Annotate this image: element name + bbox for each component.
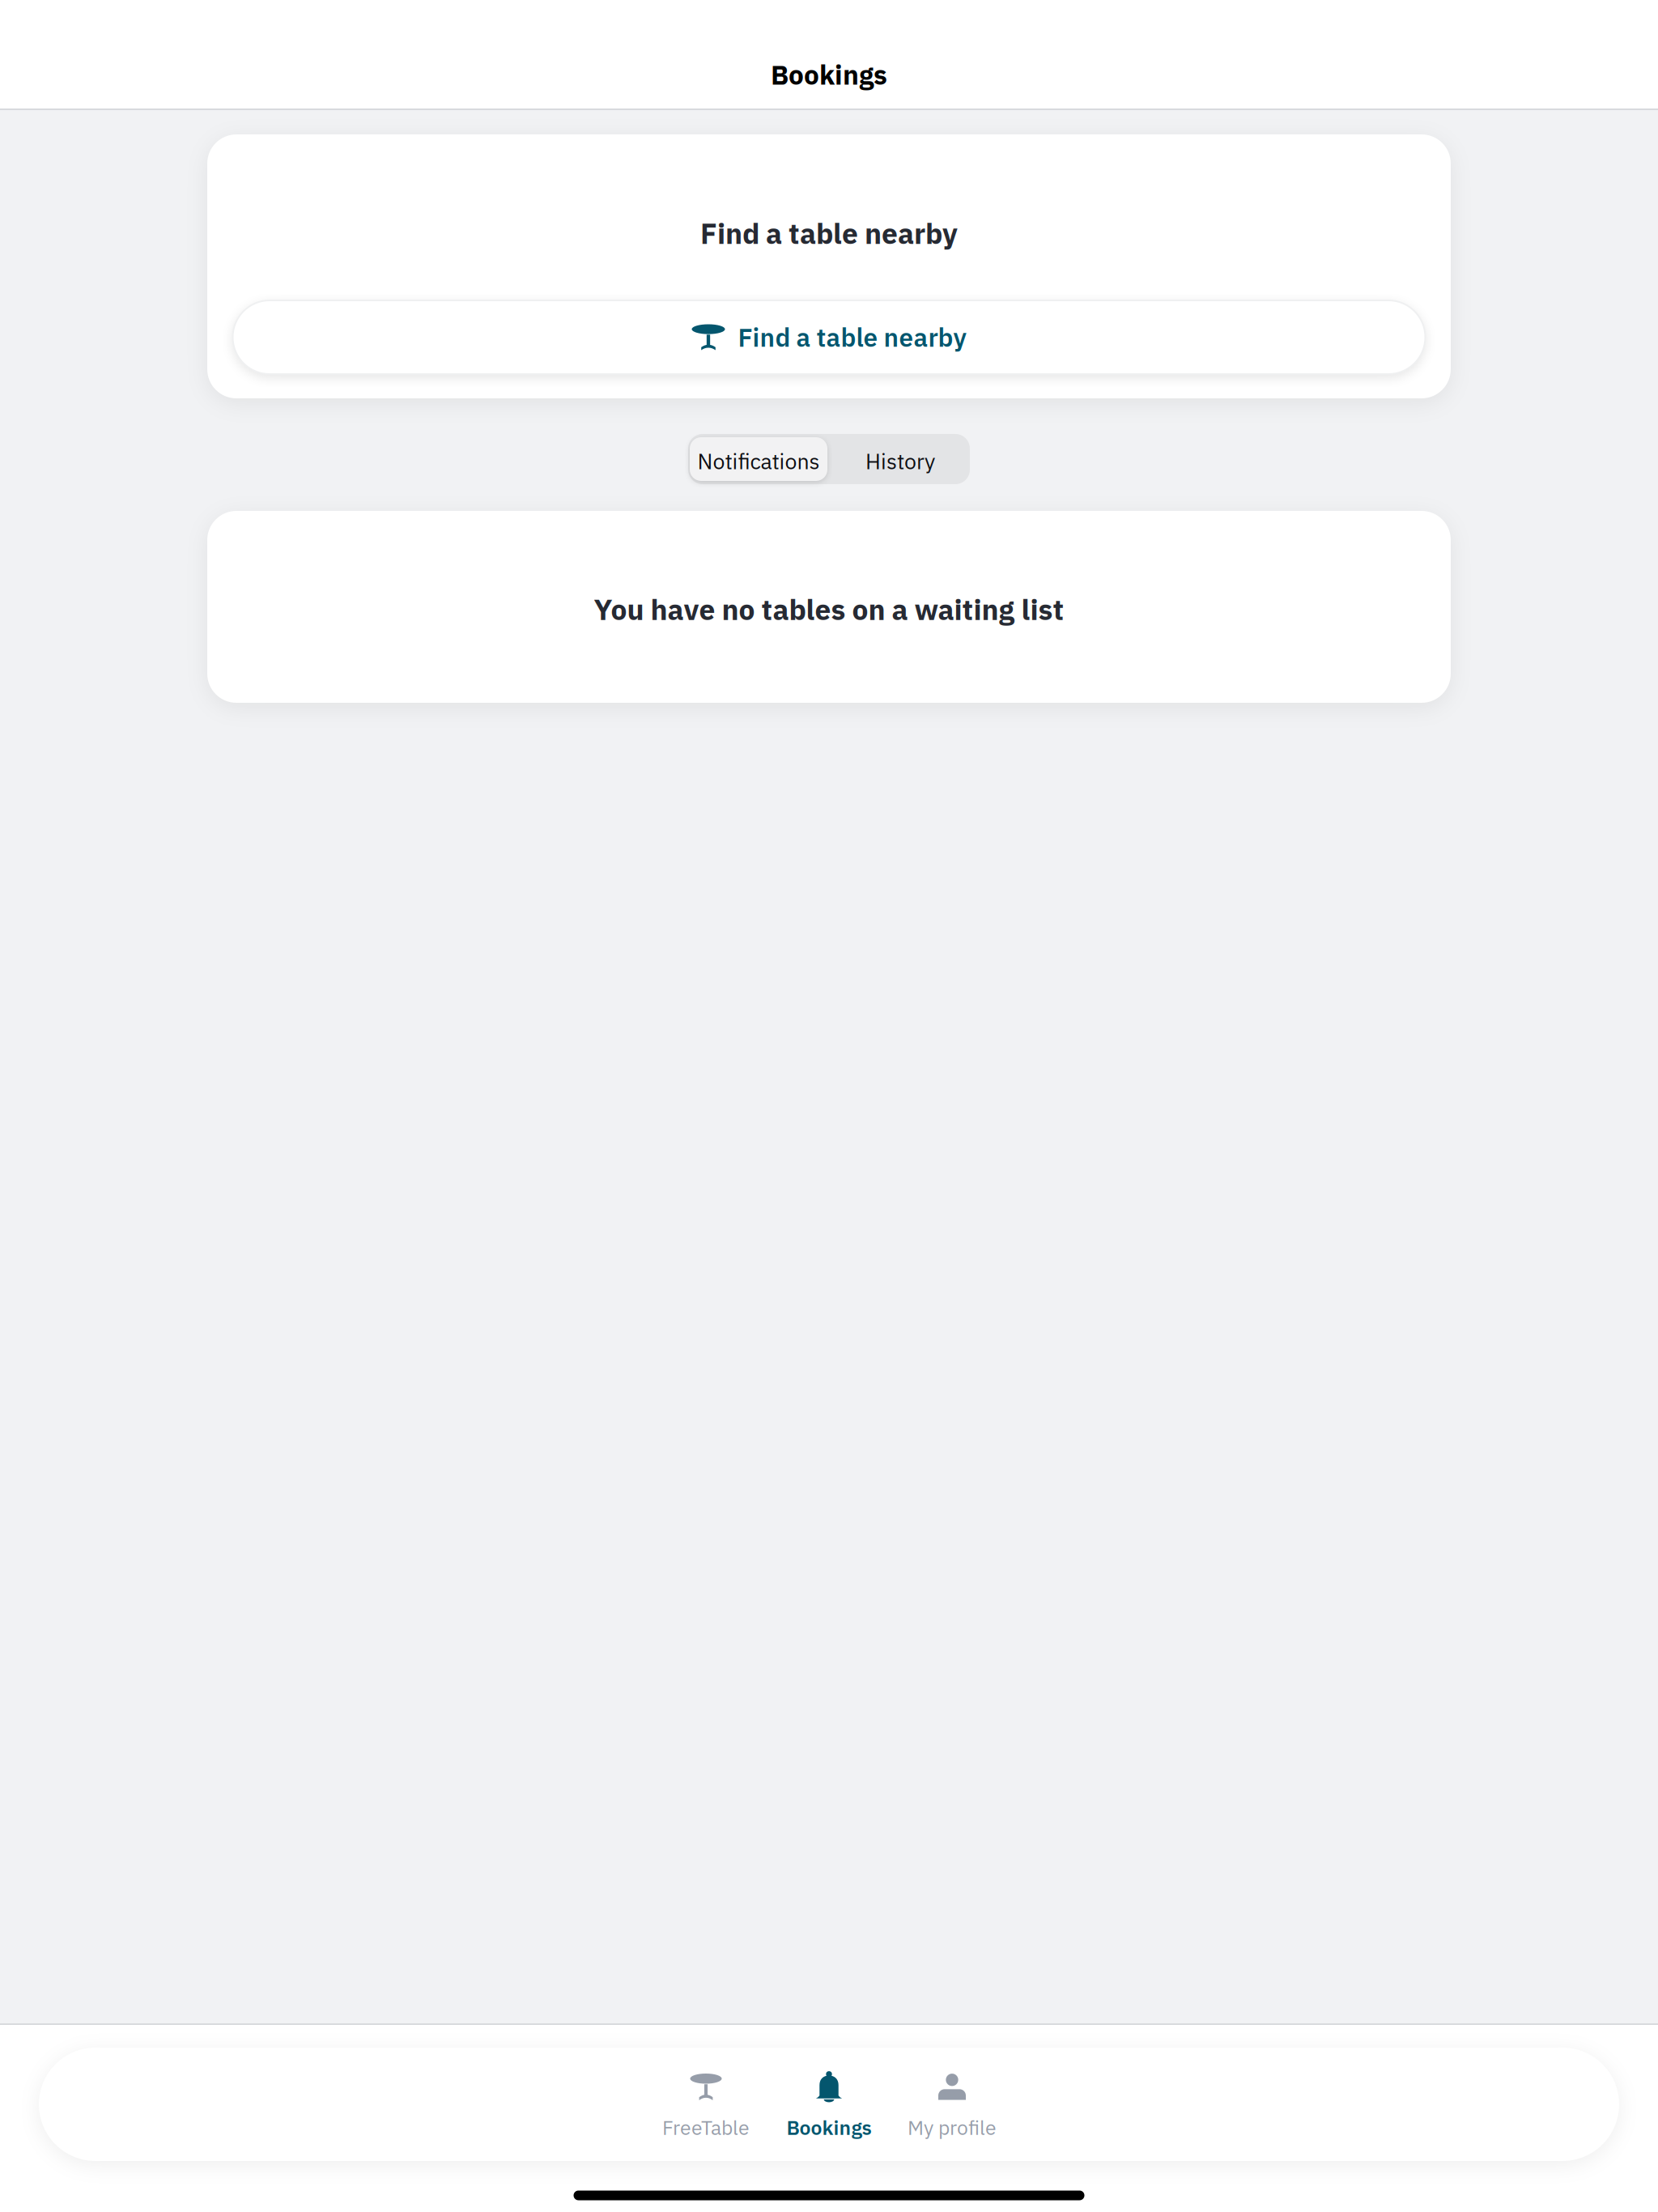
staticText: You have no tables on a waiting list	[594, 591, 1064, 628]
staticText: Find a table nearby	[700, 215, 958, 252]
staticText: My profile	[908, 2114, 997, 2140]
button[interactable]: Notifications	[690, 437, 827, 481]
staticText: FreeTable	[662, 2114, 750, 2140]
button[interactable]: History	[831, 439, 969, 483]
staticText: Bookings	[771, 57, 887, 92]
button[interactable]: FreeTable	[644, 2060, 767, 2149]
button[interactable]: Bookings	[767, 2060, 891, 2149]
staticText: Bookings	[786, 2114, 872, 2140]
staticText: History	[865, 447, 935, 475]
button[interactable]: My profile	[891, 2060, 1014, 2149]
staticText: Notifications	[697, 447, 820, 475]
button[interactable]: Find a table nearby	[233, 300, 1425, 374]
staticText: Find a table nearby	[738, 321, 966, 354]
